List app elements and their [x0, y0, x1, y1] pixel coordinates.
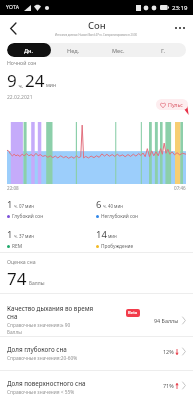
- staticText: Неглубокий сон: [101, 213, 138, 220]
- staticText: Доля глубокого сна: [7, 345, 67, 353]
- button[interactable]: Нед.: [51, 43, 96, 57]
- staticText: Оценка сна: [7, 258, 36, 265]
- staticText: 6: [96, 198, 102, 211]
- staticText: Дн.: [24, 47, 34, 54]
- staticText: 71%: [163, 382, 174, 389]
- staticText: Пульс: [168, 101, 183, 108]
- staticText: Глубокий сон: [12, 213, 44, 220]
- staticText: мин: [108, 233, 117, 239]
- staticText: Beta: [128, 310, 138, 316]
- staticText: 23:19: [172, 4, 188, 12]
- staticText: Г.: [161, 47, 166, 54]
- staticText: 94 Баллы: [154, 317, 179, 324]
- staticText: Источник данных: Huawei Band 4 Pro. Синх…: [55, 33, 138, 37]
- staticText: Справочные значения≥ 90: [7, 322, 71, 329]
- staticText: ч. 40 мин: [103, 203, 123, 209]
- staticText: Ночной сон: [7, 59, 37, 66]
- button[interactable]: More options: [170, 18, 190, 38]
- button[interactable]: Качество дыхания во время: [0, 300, 193, 336]
- button[interactable]: Дн.: [7, 43, 51, 57]
- button[interactable]: Мес.: [96, 43, 141, 57]
- staticText: 12%: [163, 348, 174, 355]
- staticText: Справочные значения:20-60%: [7, 355, 78, 362]
- staticText: Баллы: [7, 329, 22, 336]
- staticText: REM: [12, 243, 23, 250]
- staticText: ч. 37 мин: [14, 233, 34, 239]
- staticText: Мес.: [112, 47, 125, 54]
- staticText: Доля поверхностного сна: [7, 379, 86, 387]
- staticText: YOTA: [6, 4, 20, 11]
- button[interactable]: Доля глубокого сна: [0, 345, 193, 369]
- staticText: ч.: [17, 82, 25, 89]
- staticText: 07:46: [174, 185, 186, 191]
- staticText: Баллы: [29, 280, 45, 287]
- staticText: Справочные значения < 55%: [7, 389, 75, 396]
- button[interactable]: Back: [3, 18, 23, 38]
- button[interactable]: Г.: [141, 43, 186, 57]
- button[interactable]: Доля поверхностного сна: [0, 379, 193, 400]
- staticText: 14: [96, 228, 107, 241]
- staticText: 74: [7, 267, 27, 290]
- staticText: 22:08: [7, 185, 19, 191]
- staticText: сна: [7, 312, 18, 320]
- staticText: 22.02.2021: [7, 94, 33, 101]
- staticText: ч. 07 мин: [14, 203, 34, 209]
- button[interactable]: Пульс: [156, 99, 188, 110]
- staticText: Качество дыхания во время: [7, 304, 94, 312]
- staticText: 1: [7, 228, 13, 241]
- staticText: 24: [25, 69, 45, 92]
- staticText: мин: [46, 82, 57, 89]
- staticText: Пробуждение: [101, 243, 134, 250]
- staticText: Сон: [88, 19, 106, 32]
- staticText: 9: [7, 69, 17, 92]
- staticText: Нед.: [67, 47, 80, 54]
- staticText: 1: [7, 198, 13, 211]
